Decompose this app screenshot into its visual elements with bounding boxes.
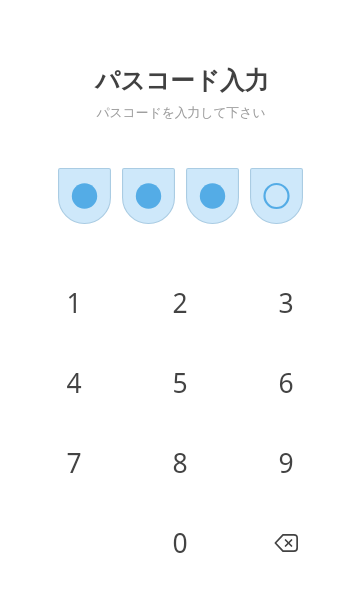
button[interactable]: 8	[132, 427, 228, 499]
staticText: 0	[172, 525, 188, 561]
button[interactable]: 9	[238, 427, 334, 499]
button[interactable]: 0	[132, 507, 228, 579]
button[interactable]: 5	[132, 347, 228, 419]
staticText: パスコードを入力して下さい	[96, 105, 266, 121]
staticText: 9	[278, 445, 294, 481]
staticText: 4	[66, 365, 82, 401]
button[interactable]: 4	[26, 347, 122, 419]
button[interactable]: 6	[238, 347, 334, 419]
staticText: 3	[278, 285, 294, 321]
button[interactable]: 2	[132, 267, 228, 339]
button[interactable]: 7	[26, 427, 122, 499]
staticText: 1	[66, 285, 82, 321]
button[interactable]: Delete	[238, 507, 334, 579]
staticText: 6	[278, 365, 294, 401]
staticText: パスコード入力	[95, 65, 269, 96]
staticText: 8	[172, 445, 188, 481]
staticText: 7	[66, 445, 82, 481]
staticText: 5	[172, 365, 188, 401]
button[interactable]: 1	[26, 267, 122, 339]
staticText: 2	[172, 285, 188, 321]
button[interactable]: 3	[238, 267, 334, 339]
